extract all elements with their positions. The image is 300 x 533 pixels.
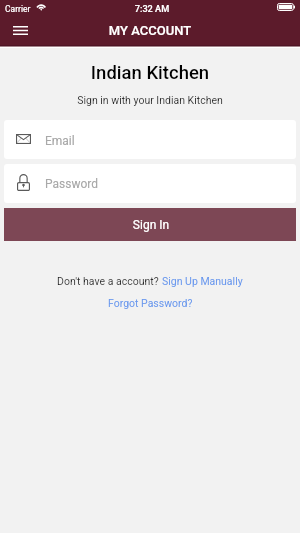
button[interactable]: Sign In bbox=[4, 208, 296, 241]
staticText: Carrier bbox=[5, 4, 31, 14]
button[interactable]: Sign Up Manually bbox=[162, 275, 243, 287]
staticText: Password bbox=[45, 177, 99, 191]
staticText: MY ACCOUNT bbox=[0, 23, 300, 38]
staticText: Indian Kitchen bbox=[0, 62, 300, 84]
staticText: 7:32 AM bbox=[2, 3, 300, 14]
button[interactable]: Email bbox=[4, 120, 296, 159]
other: Wi-Fi bbox=[36, 4, 46, 11]
staticText: Forgot Password? bbox=[108, 297, 193, 309]
staticText: Sign in with your Indian Kitchen bbox=[0, 94, 300, 106]
other: Battery bbox=[277, 3, 295, 11]
staticText: Don't have a account? bbox=[57, 275, 162, 287]
button[interactable]: Menu bbox=[7, 20, 34, 40]
staticText: Sign In bbox=[5, 218, 297, 232]
staticText: Sign Up Manually bbox=[162, 275, 243, 287]
staticText: Email bbox=[45, 134, 75, 148]
button[interactable]: Forgot Password? bbox=[108, 297, 193, 309]
button[interactable]: Password bbox=[4, 164, 296, 203]
